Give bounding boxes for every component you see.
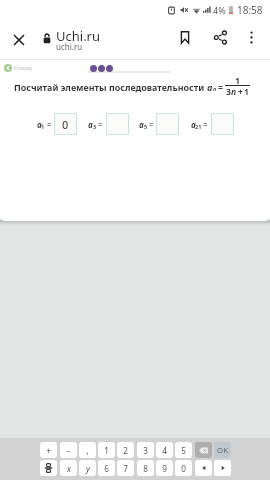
staticText: 5 [144,123,148,130]
button[interactable]: 2 [117,442,134,458]
staticText: = [149,119,154,130]
button[interactable]: OK [214,442,231,458]
staticText: a [191,119,196,130]
staticText: 1 [244,86,249,98]
button[interactable]: 3 [137,442,154,458]
staticText: 0 [62,117,69,132]
button[interactable]: Bookmark [171,24,198,51]
button[interactable]: 8 [137,460,154,476]
staticText: , [86,445,89,456]
staticText: 0 [181,463,186,474]
staticText: 1 [235,74,241,86]
button[interactable] [156,113,179,135]
staticText: 1 [104,445,109,456]
staticText: − [66,445,71,456]
staticText: + [46,445,51,456]
button[interactable] [211,113,234,135]
staticText: 7 [123,463,128,474]
staticText: 6 [104,463,109,474]
button[interactable]: Right [214,460,231,476]
staticText: Uchi.ru [56,27,101,45]
staticText: 5 [181,445,186,456]
button[interactable]: 0 [175,460,192,476]
button[interactable]: 6 [98,460,115,476]
button[interactable]: 7 [117,460,134,476]
staticText: 4% [213,4,226,16]
staticText: x [67,463,71,474]
staticText: Назад [14,64,32,72]
staticText: OK [217,445,228,456]
staticText: 1 [41,123,45,130]
staticText: 3 [226,86,231,98]
staticText: 4 [162,445,167,456]
button[interactable]: , [79,442,96,458]
staticText: 8 [143,463,148,474]
button[interactable]: + [40,442,57,458]
staticText: 18:58 [237,3,263,17]
staticText: 2 [123,445,128,456]
staticText: uchi.ru [56,41,83,52]
staticText: n [231,86,237,98]
button[interactable]: More options [238,24,265,51]
staticText: a [139,119,144,130]
button[interactable]: 0 [54,113,77,135]
staticText: y [86,463,90,474]
staticText: 21 [195,123,202,130]
staticText: 3 [143,445,148,456]
button[interactable]: Backspace [195,442,212,458]
staticText: a [37,119,42,130]
button[interactable]: y [79,460,96,476]
button[interactable]: 4 [156,442,173,458]
staticText: a [207,81,213,93]
staticText: Посчитай элементы последовательности [14,81,205,93]
staticText: = [203,119,208,130]
staticText: n [213,85,217,92]
staticText: 3 [93,123,97,130]
button[interactable]: 1 [98,442,115,458]
button[interactable]: Left [195,460,212,476]
button[interactable]: 9 [156,460,173,476]
button[interactable]: Fraction [40,460,57,476]
button[interactable]: − [60,442,77,458]
button[interactable]: Back [4,64,32,76]
staticText: = [218,81,224,93]
button[interactable] [106,113,129,135]
staticText: = [47,119,52,130]
staticText: a [88,119,93,130]
button[interactable]: x [60,460,77,476]
button[interactable]: 5 [175,442,192,458]
button[interactable]: Close [5,26,32,53]
staticText: + [238,86,243,98]
staticText: 9 [162,463,167,474]
button[interactable]: Share [207,24,234,51]
staticText: = [98,119,103,130]
